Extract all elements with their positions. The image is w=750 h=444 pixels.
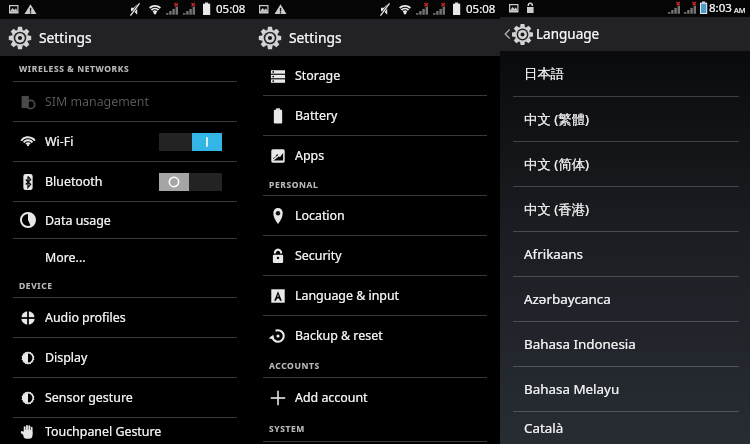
staticText: Bahasa Indonesia (524, 335, 636, 353)
staticText: SIM management (45, 93, 149, 110)
button[interactable]: Location (250, 196, 500, 235)
button[interactable]: 中文 (简体) (500, 142, 750, 186)
staticText: 中文 (繁體) (524, 110, 590, 128)
button[interactable]: Settings (0, 19, 250, 56)
staticText: Touchpanel Gesture (45, 423, 162, 440)
button[interactable]: 日本語 (500, 51, 750, 96)
staticText: Language (536, 25, 600, 43)
staticText: Bahasa Melayu (524, 380, 620, 398)
staticText: PERSONAL (269, 179, 319, 191)
button[interactable]: Afrikaans (500, 232, 750, 276)
staticText: Wi-Fi (45, 133, 74, 150)
staticText: Security (295, 247, 342, 264)
button[interactable]: Azərbaycanca (500, 277, 750, 321)
staticText: WIRELESS & NETWORKS (19, 63, 130, 75)
staticText: ACCOUNTS (269, 360, 320, 372)
button[interactable]: Language (500, 17, 750, 51)
button[interactable]: Backup & reset (250, 316, 500, 355)
staticText: Add account (295, 389, 368, 406)
staticText: 05:08 (466, 1, 496, 17)
staticText: 中文 (简体) (524, 155, 590, 173)
button[interactable]: Bahasa Melayu (500, 367, 750, 411)
button[interactable]: Add account (250, 378, 500, 417)
button[interactable]: On (159, 133, 222, 151)
staticText: Settings (289, 28, 342, 47)
staticText: AM (732, 5, 746, 15)
staticText: Sensor gesture (45, 389, 133, 406)
button[interactable]: Storage (250, 56, 500, 95)
button[interactable]: Bluetooth (0, 162, 250, 201)
staticText: Battery (295, 107, 338, 124)
staticText: Azərbaycanca (524, 290, 611, 308)
button[interactable]: Sensor gesture (0, 378, 250, 417)
staticText: Data usage (45, 212, 111, 229)
button[interactable]: Security (250, 236, 500, 275)
button[interactable]: 中文 (香港) (500, 187, 750, 231)
staticText: Storage (295, 67, 341, 84)
staticText: Language & input (295, 287, 400, 304)
staticText: SYSTEM (269, 423, 305, 435)
button[interactable]: More... (0, 239, 250, 275)
button[interactable]: Touchpanel Gesture (0, 418, 250, 444)
staticText: More... (45, 249, 86, 266)
staticText: Location (295, 207, 345, 224)
staticText: 8:03 (709, 0, 732, 16)
staticText: 05:08 (216, 1, 246, 17)
button[interactable]: Audio profiles (0, 298, 250, 337)
button[interactable]: Bahasa Indonesia (500, 322, 750, 366)
button[interactable]: Data usage (0, 202, 250, 238)
button[interactable]: Català (500, 412, 750, 444)
staticText: Display (45, 349, 88, 366)
button[interactable]: Language & input (250, 276, 500, 315)
staticText: Bluetooth (45, 173, 103, 190)
button[interactable]: Apps (250, 136, 500, 175)
staticText: Català (524, 419, 564, 437)
button[interactable]: Display (0, 338, 250, 377)
button[interactable]: Settings (250, 19, 500, 56)
button[interactable]: Wi-Fi (0, 122, 250, 161)
button[interactable]: SIM management (0, 82, 250, 121)
staticText: DEVICE (19, 280, 53, 292)
staticText: 中文 (香港) (524, 200, 590, 218)
staticText: Audio profiles (45, 309, 126, 326)
staticText: Backup & reset (295, 327, 383, 344)
button[interactable]: Off (159, 173, 222, 191)
button[interactable]: Battery (250, 96, 500, 135)
staticText: Settings (39, 28, 92, 47)
staticText: Afrikaans (524, 245, 584, 263)
staticText: Apps (295, 147, 325, 164)
button[interactable]: 中文 (繁體) (500, 97, 750, 141)
staticText: 日本語 (524, 65, 565, 82)
